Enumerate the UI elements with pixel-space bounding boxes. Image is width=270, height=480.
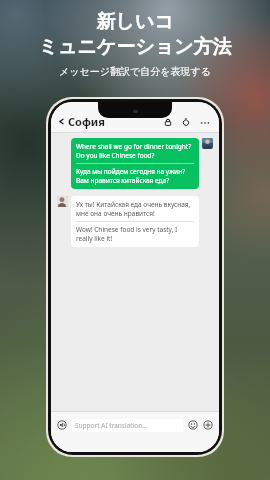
button[interactable]: Your avatar <box>202 138 213 149</box>
button[interactable]: More actions <box>202 419 214 431</box>
button[interactable]: Support AI translation... <box>72 419 183 432</box>
staticText: Ух ты! Китайская еда очень вкусная, мне … <box>76 200 191 218</box>
button[interactable]: More options <box>198 116 212 128</box>
staticText: Support AI translation... <box>75 421 148 430</box>
staticText: メッセージ翻訳で自分を表現する <box>59 65 211 78</box>
button[interactable]: Encryption lock <box>162 116 174 128</box>
staticText: София <box>68 114 105 129</box>
staticText: 新しいコ <box>96 10 174 34</box>
button[interactable]: Voice input <box>56 419 68 431</box>
staticText: Куда мы пойдем сегодня на ужин? Вам нрав… <box>76 167 185 185</box>
button[interactable]: Emoji <box>187 419 199 431</box>
button[interactable]: Disappearing messages timer <box>180 116 192 128</box>
button[interactable]: Ух ты! Китайская еда очень вкусная, мне … <box>71 196 199 247</box>
staticText: Where shall we go for dinner tonight? Do… <box>76 142 191 160</box>
staticText: ミュニケーション方法 <box>38 35 232 59</box>
button[interactable]: Back to София <box>58 114 105 132</box>
button[interactable]: София avatar <box>57 196 68 207</box>
staticText: Wow! Chinese food is very tasty, I reall… <box>76 225 178 243</box>
button[interactable]: Where shall we go for dinner tonight? Do… <box>71 138 199 189</box>
